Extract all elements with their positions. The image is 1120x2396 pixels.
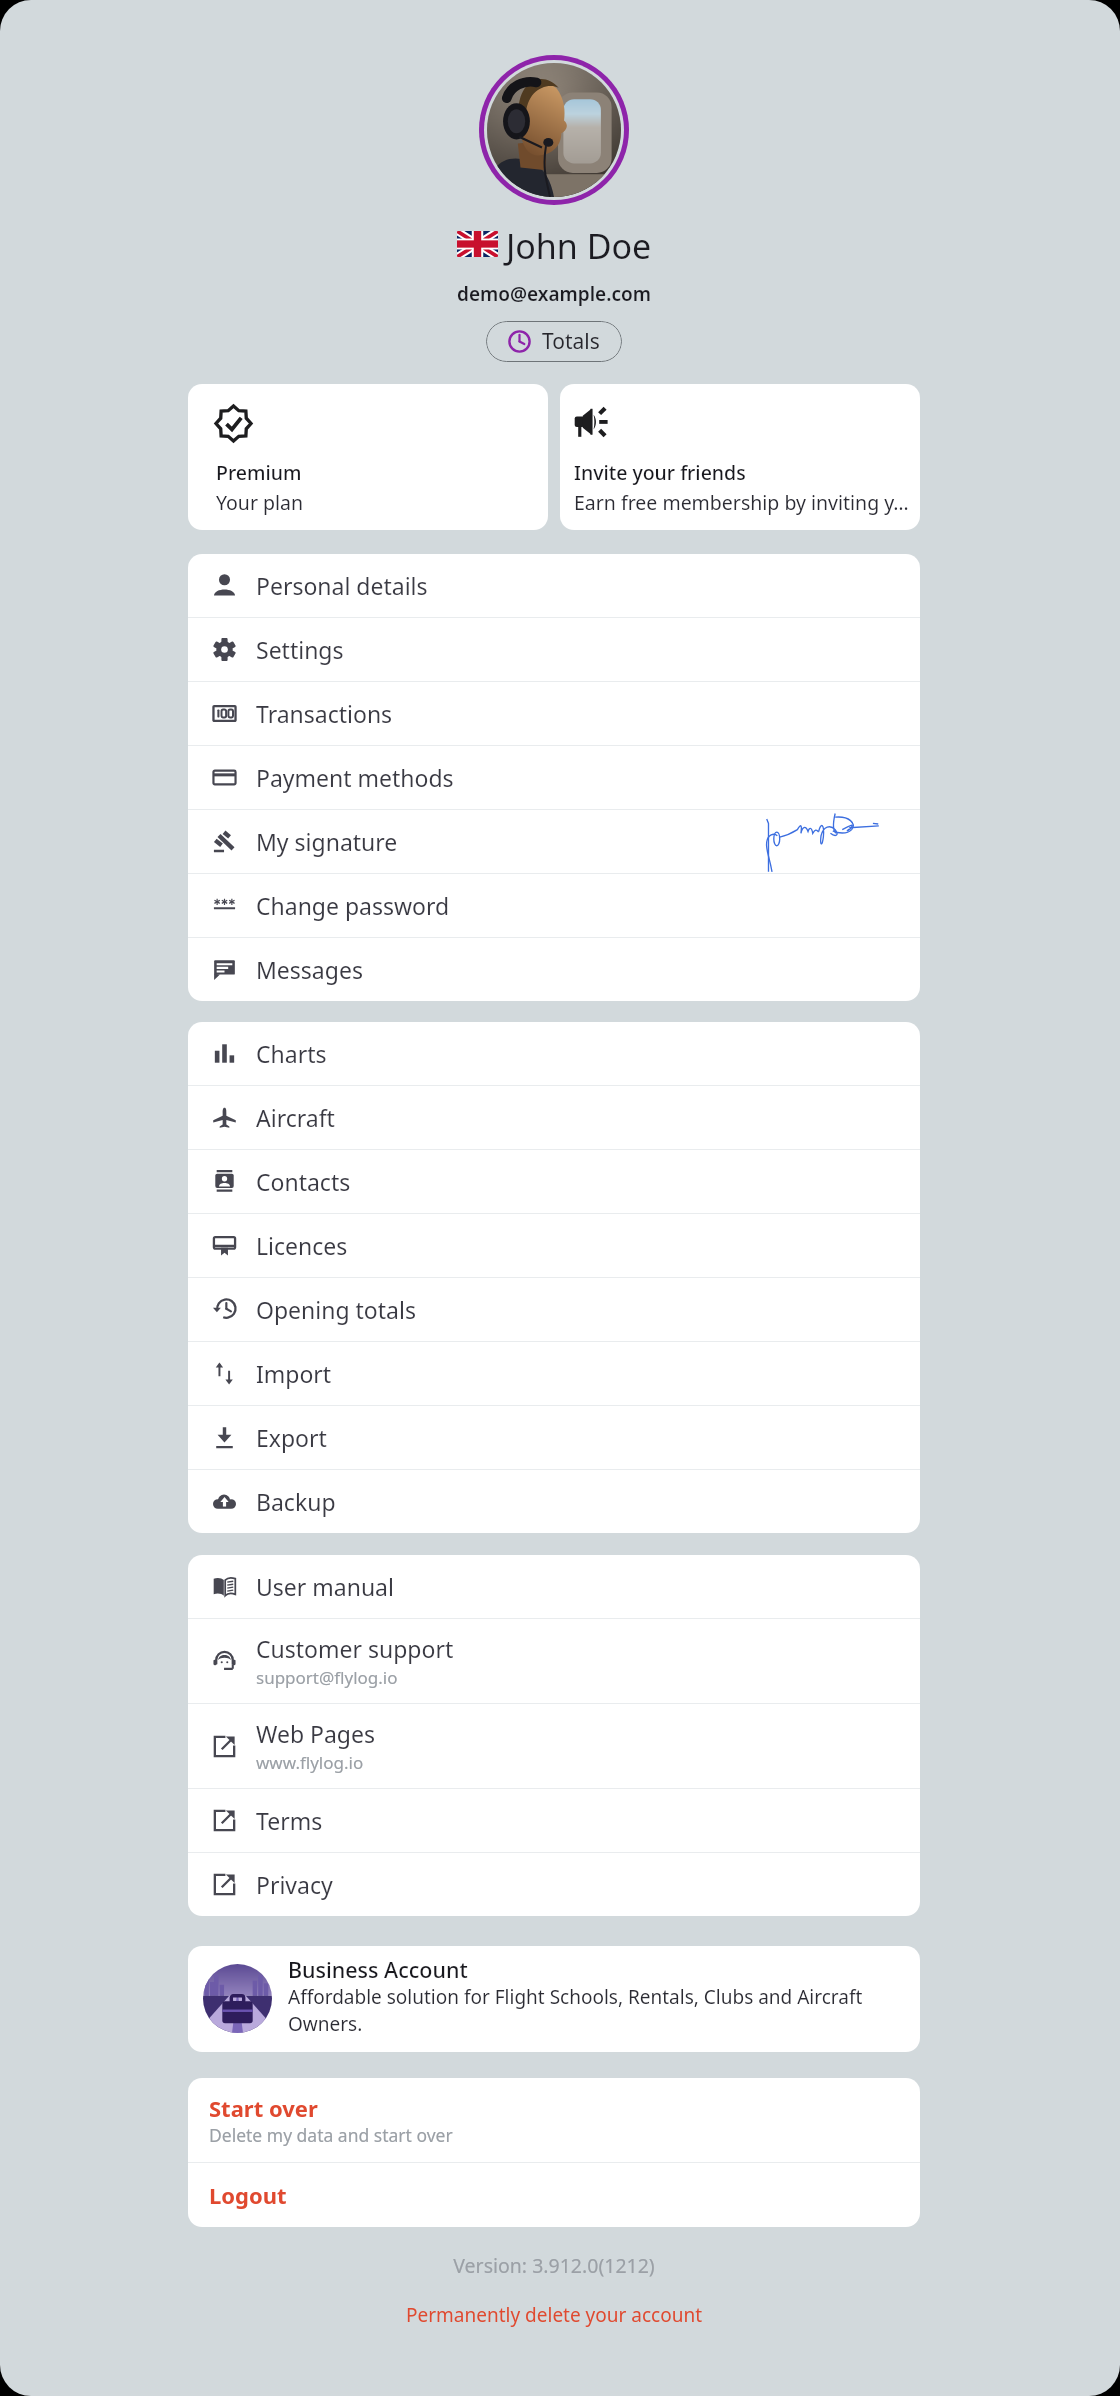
staticText: John Doe xyxy=(506,223,652,269)
button[interactable]: Charts xyxy=(188,1022,920,1085)
button[interactable]: Change password xyxy=(188,874,920,937)
button[interactable]: Start over xyxy=(188,2078,920,2162)
staticText: Business Account xyxy=(288,1955,468,1984)
staticText: Delete my data and start over xyxy=(209,2123,453,2147)
button[interactable]: Backup xyxy=(188,1470,920,1533)
staticText: Start over xyxy=(209,2093,318,2123)
staticText: Change password xyxy=(256,890,450,921)
button[interactable]: User manual xyxy=(188,1555,920,1618)
staticText: Invite your friends xyxy=(574,459,746,486)
staticText: Licences xyxy=(256,1230,348,1261)
staticText: Contacts xyxy=(256,1166,351,1197)
staticText: Import xyxy=(256,1358,332,1389)
staticText: Payment methods xyxy=(256,762,454,793)
staticText: Transactions xyxy=(256,698,393,729)
staticText: Opening totals xyxy=(256,1294,416,1325)
staticText: Privacy xyxy=(256,1869,333,1900)
staticText: Settings xyxy=(256,634,344,665)
staticText: Affordable solution for Flight Schools, … xyxy=(288,1984,900,2037)
button[interactable]: Opening totals xyxy=(188,1278,920,1341)
button[interactable]: Business Account xyxy=(188,1946,920,2052)
button[interactable]: Messages xyxy=(188,938,920,1001)
staticText: demo@example.com xyxy=(0,281,1108,307)
button[interactable]: Customer support xyxy=(188,1619,920,1703)
button[interactable]: Premium xyxy=(188,384,548,530)
button[interactable]: Permanently delete your account xyxy=(402,2298,707,2332)
button[interactable]: Contacts xyxy=(188,1150,920,1213)
staticText: support@flylog.io xyxy=(256,1666,398,1689)
staticText: Premium xyxy=(216,459,302,486)
staticText: My signature xyxy=(256,826,398,857)
button[interactable]: Personal details xyxy=(188,554,920,617)
staticText: Aircraft xyxy=(256,1102,335,1133)
staticText: Charts xyxy=(256,1038,327,1069)
button[interactable]: Profile photo xyxy=(479,55,629,205)
staticText: Version: 3.912.0(1212) xyxy=(188,2252,920,2279)
staticText: Export xyxy=(256,1422,327,1453)
button[interactable]: Import xyxy=(188,1342,920,1405)
button[interactable]: Terms xyxy=(188,1789,920,1852)
button[interactable]: Export xyxy=(188,1406,920,1469)
staticText: Totals xyxy=(542,327,600,356)
button[interactable]: Totals xyxy=(486,321,622,362)
staticText: Messages xyxy=(256,954,363,985)
staticText: Customer support xyxy=(256,1633,454,1664)
button[interactable]: Logout xyxy=(188,2163,920,2227)
staticText: Web Pages xyxy=(256,1718,375,1749)
button[interactable]: Aircraft xyxy=(188,1086,920,1149)
staticText: Personal details xyxy=(256,570,428,601)
button[interactable]: Web Pages xyxy=(188,1704,920,1788)
staticText: Backup xyxy=(256,1486,336,1517)
staticText: www.flylog.io xyxy=(256,1751,364,1774)
staticText: Terms xyxy=(256,1805,323,1836)
button[interactable]: My signature xyxy=(188,810,920,873)
staticText: User manual xyxy=(256,1571,394,1602)
button[interactable]: Invite your friends xyxy=(560,384,920,530)
staticText: Logout xyxy=(209,2180,287,2210)
button[interactable]: Payment methods xyxy=(188,746,920,809)
button[interactable]: Settings xyxy=(188,618,920,681)
button[interactable]: Transactions xyxy=(188,682,920,745)
staticText: Earn free membership by inviting y… xyxy=(574,489,909,516)
staticText: Your plan xyxy=(216,489,304,516)
button[interactable]: Privacy xyxy=(188,1853,920,1916)
button[interactable]: Licences xyxy=(188,1214,920,1277)
